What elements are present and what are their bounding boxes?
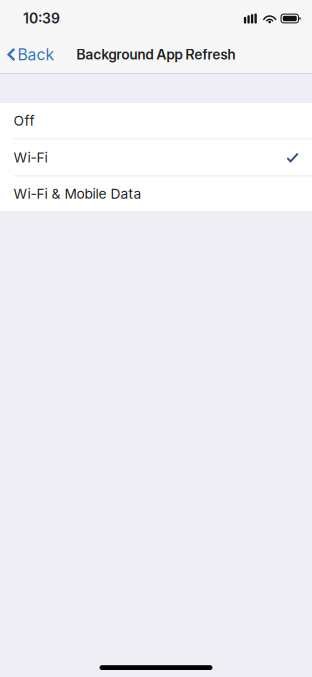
button[interactable]: Back — [0, 37, 62, 71]
button[interactable]: Wi-Fi — [0, 139, 312, 175]
staticText: Wi-Fi & Mobile Data — [13, 185, 141, 202]
staticText: Off — [13, 112, 34, 129]
staticText: Wi-Fi — [13, 149, 47, 166]
button[interactable]: Off — [0, 103, 312, 138]
button[interactable]: Wi-Fi & Mobile Data — [0, 176, 312, 211]
staticText: Background App Refresh — [76, 46, 235, 63]
staticText: Back — [17, 45, 54, 64]
staticText: 10:39 — [23, 10, 60, 27]
